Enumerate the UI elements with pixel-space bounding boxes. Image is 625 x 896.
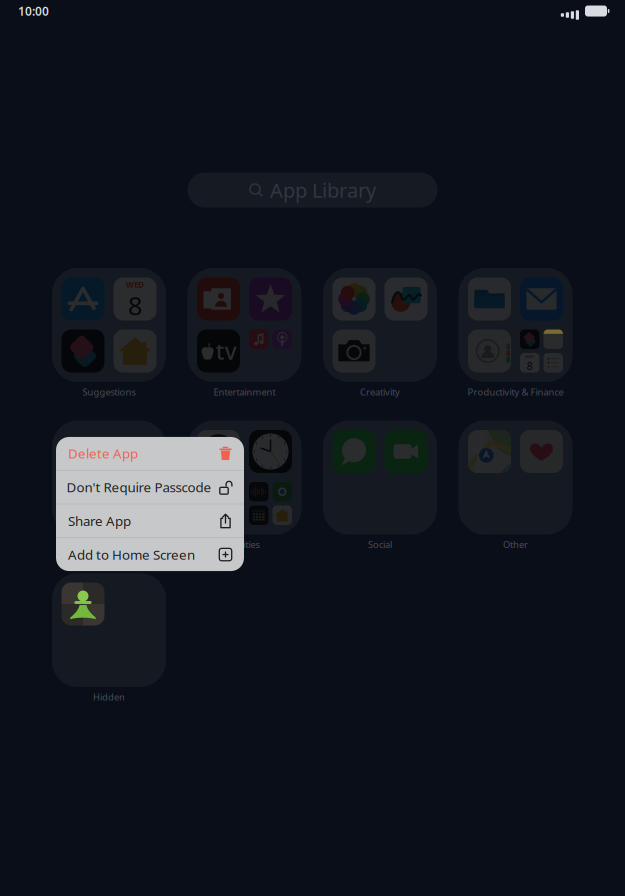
staticText: Share App [68,512,131,530]
button[interactable]: Finance [52,420,166,534]
staticText: 10:00 [18,3,49,19]
staticText: Productivity & Finance [467,386,563,398]
staticText: Entertainment [213,386,275,398]
button[interactable]: Creativity [323,268,437,382]
button[interactable]: WED [458,268,572,382]
button[interactable]: App Library [187,172,437,207]
staticText: Suggestions [82,386,135,398]
button[interactable]: Delete App [56,437,244,470]
staticText: Delete App [68,445,138,462]
button[interactable]: Hidden [52,573,166,687]
button[interactable]: Add to Home Screen [56,538,244,571]
staticText: Don't Require Passcode [66,478,211,496]
staticText: 8 [128,289,142,322]
staticText: Social [368,538,392,550]
staticText: Add to Home Screen [68,546,195,563]
staticText: WED [525,354,534,359]
button[interactable]: Don't Require Passcode [56,471,244,504]
button[interactable]: Utilities [187,420,301,534]
button[interactable]: Social [323,420,437,534]
button[interactable]: Other [458,420,572,534]
staticText: App Library [270,177,376,203]
staticText: Utilities [229,538,259,550]
staticText: WED [126,279,144,290]
staticText: Other [503,538,528,550]
staticText: 8 [527,359,533,373]
staticText: Hidden [93,691,125,703]
button[interactable]: tv [187,268,301,382]
button[interactable]: Share App [56,504,244,537]
staticText: Creativity [360,386,400,398]
button[interactable]: WED [52,268,166,382]
staticText: tv [216,336,237,366]
